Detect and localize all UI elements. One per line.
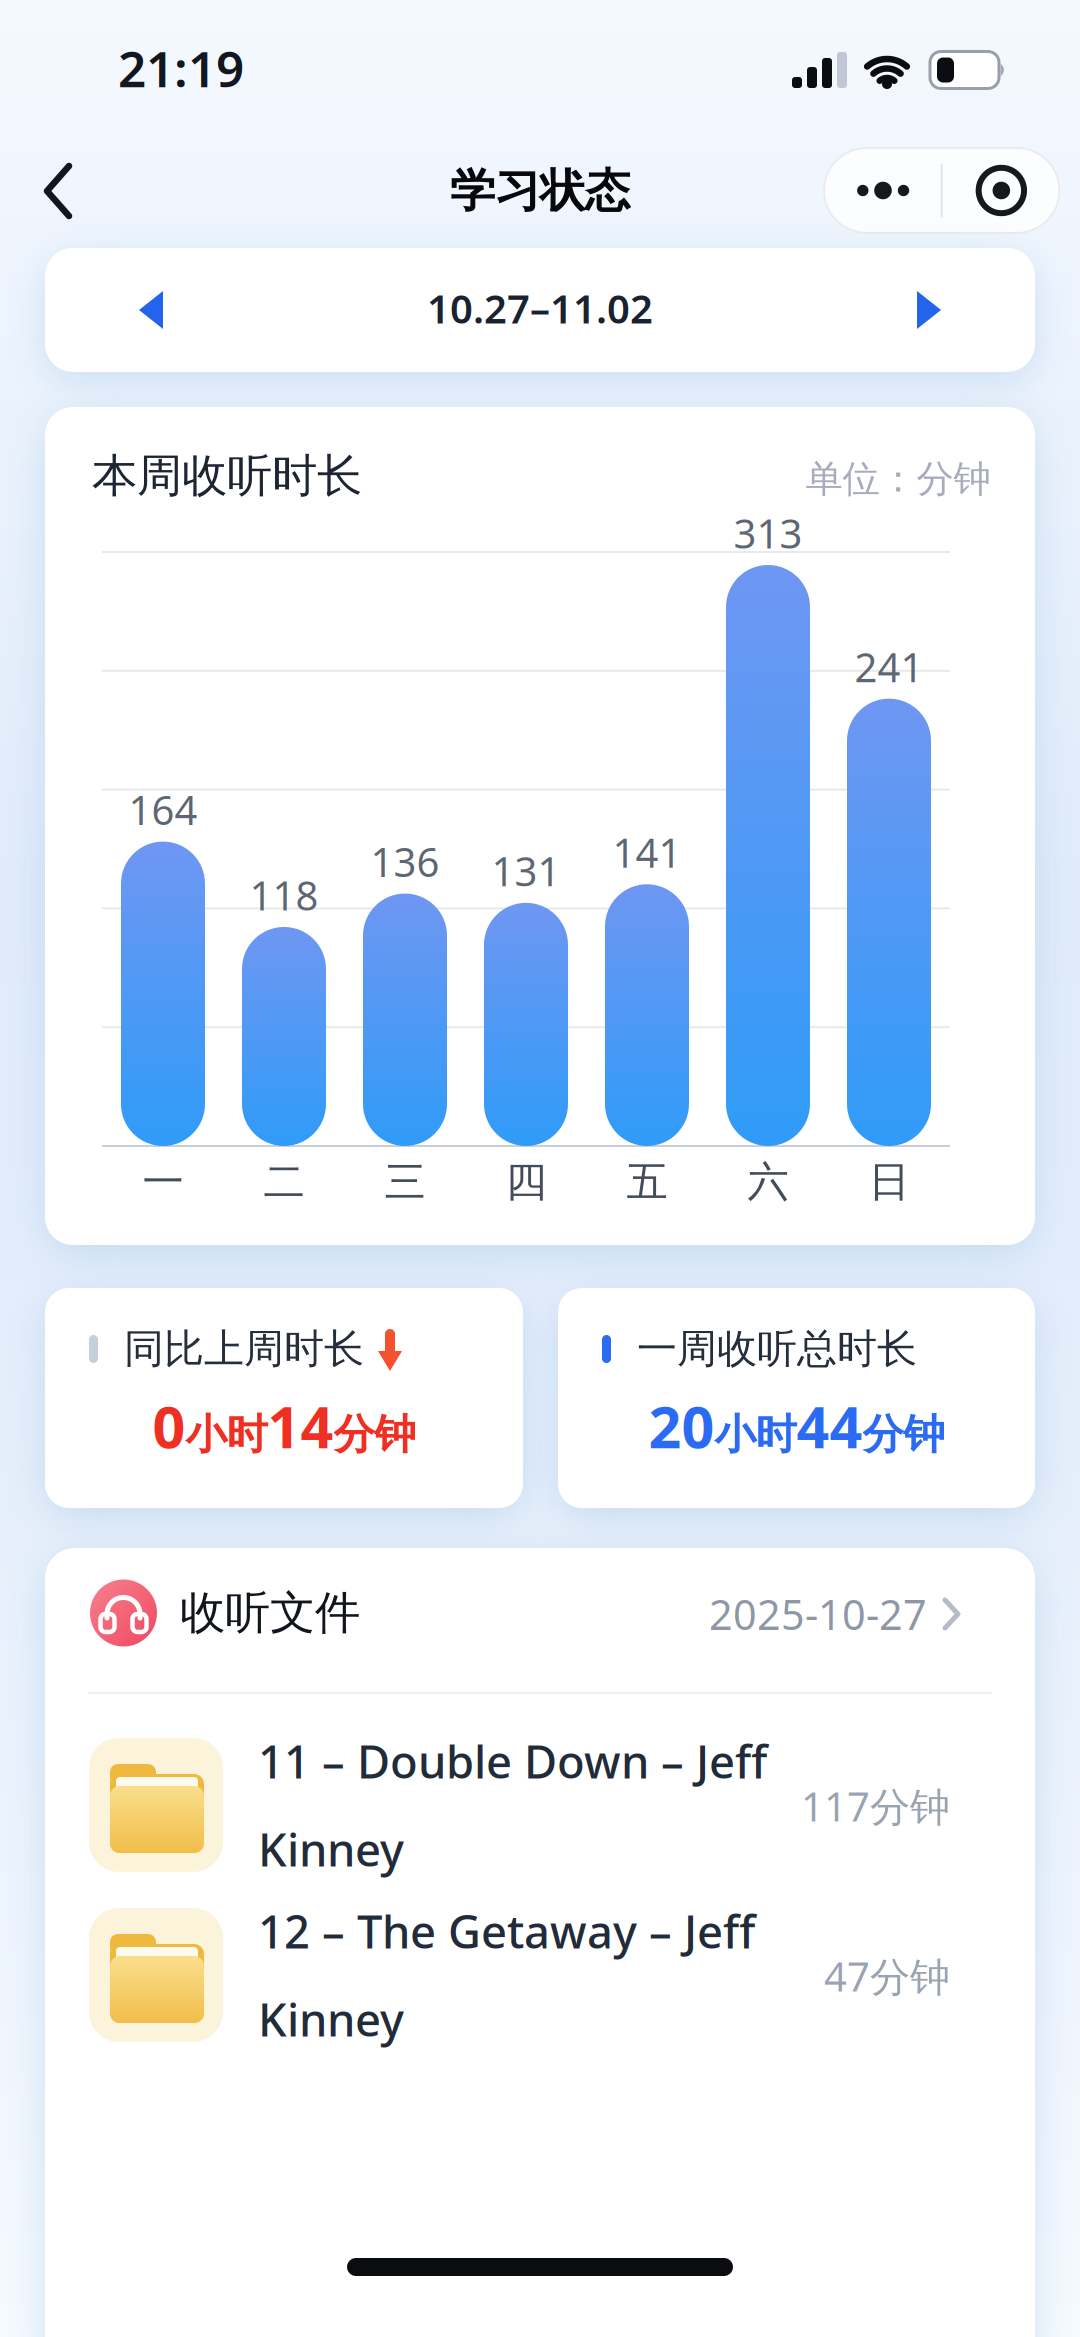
staticText: 学习状态: [450, 163, 630, 219]
button[interactable]: Previous week: [139, 291, 163, 329]
staticText: 收听文件: [180, 1585, 360, 1641]
staticText: 118: [249, 868, 318, 921]
button[interactable]: 12 – The Getaway – Jeff: [45, 1890, 1035, 2060]
button[interactable]: Close mini program: [942, 147, 1060, 234]
staticText: 分钟: [333, 1409, 415, 1460]
staticText: 14: [267, 1388, 333, 1464]
button[interactable]: Choose date: [709, 1587, 961, 1641]
staticText: 20: [648, 1388, 714, 1464]
staticText: 分钟: [862, 1409, 944, 1460]
staticText: 一周收听总时长: [637, 1324, 917, 1373]
staticText: 小时: [185, 1409, 267, 1460]
staticText: 2025-10-27: [709, 1587, 927, 1641]
staticText: 二: [263, 1157, 304, 1207]
staticText: 三: [384, 1157, 425, 1207]
staticText: 日: [868, 1157, 909, 1207]
button[interactable]: Back: [28, 156, 88, 226]
staticText: 11 – Double Down – Jeff: [258, 1731, 767, 1791]
staticText: 同比上周时长: [124, 1324, 364, 1373]
staticText: 五: [626, 1157, 667, 1207]
staticText: Kinney: [258, 1989, 404, 2049]
staticText: 四: [505, 1157, 546, 1207]
staticText: 164: [128, 783, 197, 836]
staticText: Kinney: [258, 1819, 404, 1879]
staticText: 21:19: [118, 35, 244, 101]
staticText: 241: [854, 640, 923, 693]
staticText: 313: [733, 506, 802, 559]
button[interactable]: Next week: [917, 291, 941, 329]
staticText: 47分钟: [824, 1949, 950, 2002]
button[interactable]: 11 – Double Down – Jeff: [45, 1720, 1035, 1890]
staticText: 本周收听时长: [92, 448, 362, 504]
staticText: 10.27–11.02: [427, 281, 653, 334]
staticText: 0: [152, 1388, 185, 1464]
staticText: 一: [142, 1157, 183, 1207]
staticText: 136: [370, 835, 439, 888]
staticText: 141: [612, 826, 681, 879]
button[interactable]: More: [823, 147, 941, 234]
staticText: 44: [796, 1388, 862, 1464]
staticText: 六: [747, 1157, 788, 1207]
staticText: 131: [491, 844, 560, 897]
staticText: 小时: [714, 1409, 796, 1460]
staticText: 12 – The Getaway – Jeff: [258, 1901, 755, 1961]
staticText: 117分钟: [801, 1779, 950, 1832]
staticText: 单位：分钟: [805, 456, 990, 502]
